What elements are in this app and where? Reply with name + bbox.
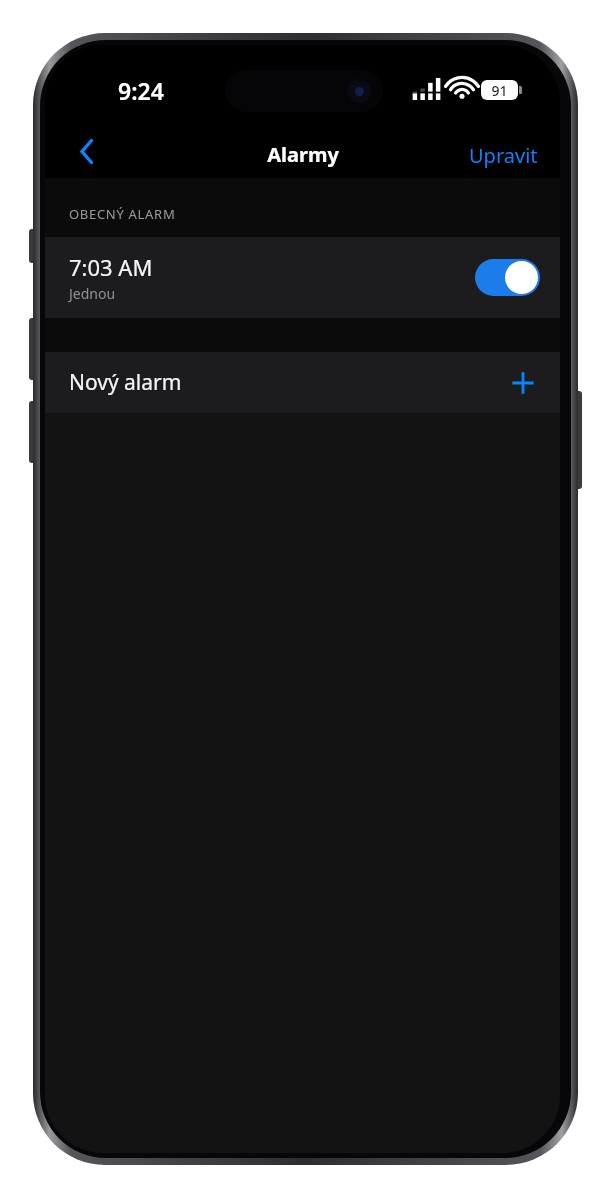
button[interactable]: Alarm on: [475, 259, 540, 296]
button[interactable]: 7:03 AM: [45, 237, 560, 318]
staticText: 7:03 AM: [69, 252, 153, 282]
button[interactable]: Upravit: [465, 136, 542, 175]
staticText: 9:24: [118, 75, 164, 106]
button[interactable]: Nový alarm: [45, 352, 560, 413]
staticText: OBECNÝ ALARM: [69, 205, 176, 223]
staticText: Nový alarm: [69, 368, 506, 397]
button[interactable]: Back: [65, 129, 109, 173]
staticText: Upravit: [469, 142, 538, 169]
staticText: Jednou: [69, 284, 116, 303]
staticText: 91: [491, 81, 508, 100]
staticText: Alarmy: [267, 141, 339, 168]
